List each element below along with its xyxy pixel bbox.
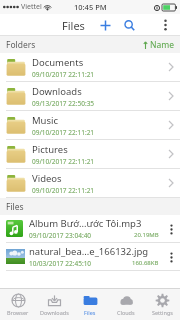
button[interactable]: Documents [0,53,180,82]
staticText: Folders [6,39,36,51]
button[interactable]: Music [0,111,180,140]
button[interactable]: natural_bea…e_166132.jpg [0,243,180,271]
staticText: Videos [32,172,62,185]
staticText: 20.19MB [134,231,159,239]
staticText: Files [62,18,85,33]
staticText: 09/10/2017 22:11:21 [32,186,95,195]
button[interactable]: Clouds [108,289,144,320]
staticText: natural_bea…e_166132.jpg [29,245,149,258]
staticText: 09/13/2017 22:50:35 [32,99,95,108]
staticText: Pictures [32,143,68,156]
staticText: 160.68KB [132,259,159,267]
staticText: Documents [32,56,84,69]
button[interactable]: Videos [0,169,180,198]
button[interactable]: Downloads [36,289,72,320]
staticText: 09/10/2017 22:11:21 [32,157,95,166]
staticText: Album Bướ…ước Tôi.mp3 [29,217,142,230]
staticText: 09/10/2017 23:04:40 [29,231,92,240]
staticText: 10/03/2017 22:45:10 [29,259,92,268]
staticText: 10:45 PM [74,2,107,12]
staticText: Music [32,114,59,127]
button[interactable]: Search [120,16,138,34]
button[interactable]: Album Bướ…ước Tôi.mp3 [0,215,180,243]
button[interactable]: Downloads [0,82,180,111]
staticText: 09/10/2017 22:11:21 [32,128,95,137]
staticText: Downloads [32,85,82,98]
staticText: Browser [7,309,29,316]
staticText: Settings [152,309,173,316]
button[interactable]: Browser [0,289,36,320]
button[interactable]: File options [165,217,177,241]
staticText: Viettel [21,2,42,12]
staticText: Clouds [117,309,135,316]
button[interactable]: Files [72,289,108,320]
button[interactable]: Add [96,16,114,34]
button[interactable]: Name [143,39,174,51]
button[interactable]: More options [155,15,175,35]
staticText: Name [150,39,174,51]
staticText: 09/10/2017 22:11:21 [32,70,95,79]
staticText: Files [6,201,24,213]
staticText: Files [84,309,96,316]
button[interactable]: File options [165,245,177,269]
staticText: Downloads [40,309,69,316]
button[interactable]: Settings [144,289,180,320]
button[interactable]: Pictures [0,140,180,169]
